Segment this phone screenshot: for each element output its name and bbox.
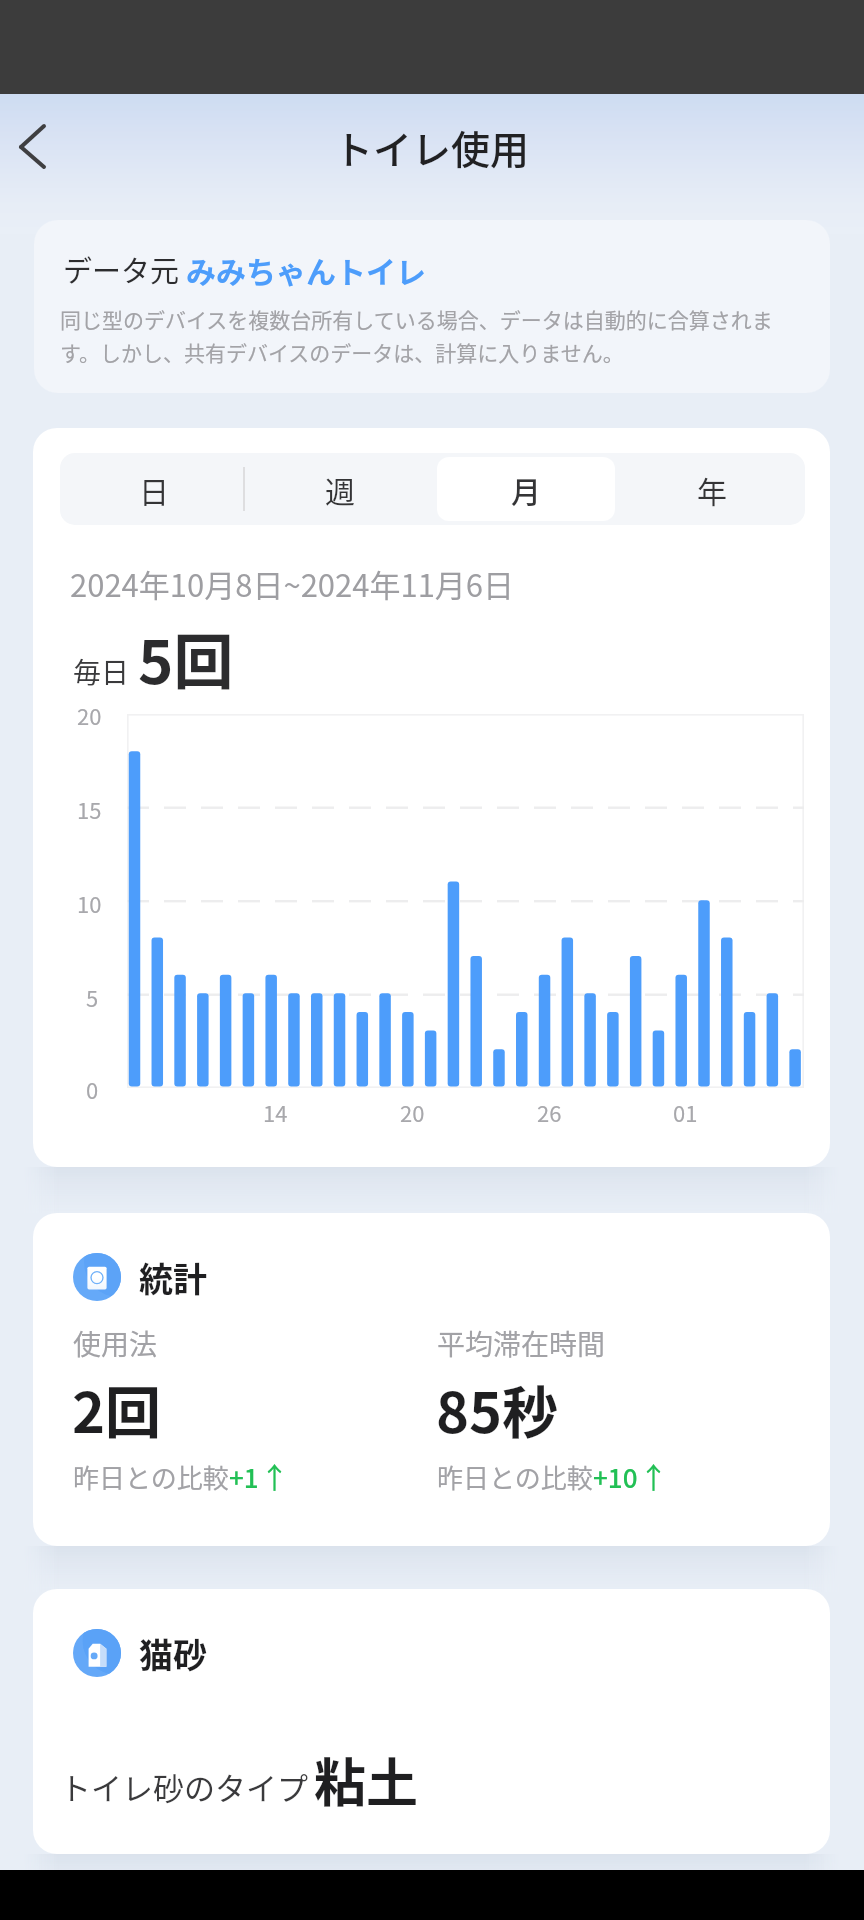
staticText: 使用法 [73,1323,158,1364]
button[interactable]: 猫砂 [33,1589,830,1854]
staticText: 平均滞在時間 [437,1323,606,1364]
staticText: 昨日との比較 [437,1458,593,1496]
staticText: 14 [263,1096,288,1128]
staticText: トイレ砂のタイプ [60,1764,308,1809]
button[interactable]: 日 [33,428,830,1167]
staticText: 週 [325,468,355,511]
staticText: 26 [537,1096,562,1128]
staticText: +10 [593,1458,638,1496]
staticText: 昨日との比較 [73,1458,229,1496]
staticText: ↑ [260,1455,290,1497]
staticText: +1 [229,1458,259,1496]
staticText: 同じ型のデバイスを複数台所有している場合、データは自動的に合算されます。しかし、… [60,304,790,367]
staticText: 日 [139,468,169,511]
staticText: 20 [77,699,102,731]
staticText: 15 [77,793,102,825]
staticText: 毎日 [73,651,130,692]
staticText: 粘土 [314,1742,419,1817]
button[interactable]: 統計 [33,1213,830,1546]
staticText: みみちゃんトイレ [186,248,426,291]
staticText: 01 [673,1096,698,1128]
staticText: 5回 [138,614,234,701]
staticText: 年 [697,468,727,511]
staticText: 20 [400,1096,425,1128]
button[interactable]: 日 [64,457,243,521]
button[interactable]: Back [0,111,72,183]
staticText: 2回 [72,1368,162,1449]
button[interactable]: データ元 [34,220,830,393]
staticText: ↑ [639,1455,669,1497]
staticText: 月 [511,468,541,511]
staticText: 統計 [139,1253,207,1302]
staticText: 85秒 [436,1368,559,1449]
button[interactable]: 週 [251,457,429,521]
staticText: 0 [86,1073,99,1105]
staticText: 猫砂 [139,1629,207,1678]
staticText: 2024年10月8日~2024年11月6日 [70,561,515,606]
button[interactable]: 年 [623,457,801,521]
staticText: トイレ使用 [334,119,530,175]
staticText: データ元 [63,248,186,290]
staticText: 5 [86,981,99,1013]
button[interactable]: 月 [437,457,615,521]
staticText: 10 [77,887,102,919]
